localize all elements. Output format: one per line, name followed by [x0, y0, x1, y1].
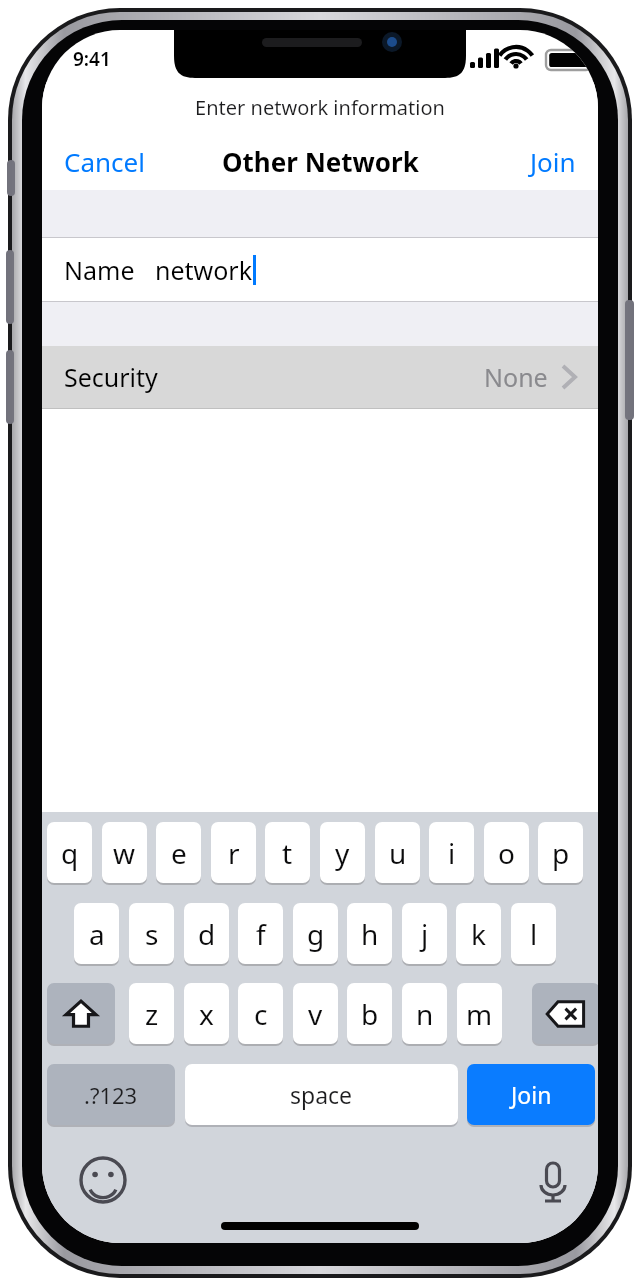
- staticText: q: [61, 834, 79, 872]
- button[interactable]: p: [538, 822, 583, 883]
- staticText: t: [282, 834, 293, 872]
- staticText: x: [199, 995, 214, 1033]
- staticText: h: [361, 915, 379, 953]
- staticText: a: [89, 915, 105, 953]
- staticText: l: [530, 915, 538, 953]
- button[interactable]: .?123: [47, 1064, 175, 1125]
- staticText: o: [498, 834, 515, 872]
- button[interactable]: space: [185, 1064, 458, 1125]
- button[interactable]: e: [156, 822, 201, 883]
- button[interactable]: u: [375, 822, 420, 883]
- button[interactable]: f: [238, 903, 283, 964]
- staticText: Security: [64, 360, 158, 394]
- button[interactable]: c: [238, 983, 283, 1044]
- staticText: Enter network information: [195, 94, 445, 121]
- staticText: s: [145, 915, 159, 953]
- button[interactable]: s: [129, 903, 174, 964]
- staticText: d: [198, 915, 216, 953]
- staticText: Other Network: [222, 144, 419, 179]
- button[interactable]: i: [429, 822, 474, 883]
- staticText: p: [552, 834, 570, 872]
- staticText: network: [155, 253, 253, 287]
- staticText: j: [421, 915, 429, 953]
- button[interactable]: x: [184, 983, 229, 1044]
- button[interactable]: m: [457, 983, 502, 1044]
- staticText: e: [171, 834, 187, 872]
- staticText: y: [335, 834, 350, 872]
- staticText: r: [228, 834, 240, 872]
- button[interactable]: z: [129, 983, 174, 1044]
- staticText: b: [361, 995, 379, 1033]
- staticText: m: [466, 995, 493, 1033]
- staticText: space: [290, 1079, 353, 1110]
- staticText: z: [145, 995, 159, 1033]
- staticText: Join: [511, 1079, 552, 1110]
- button[interactable]: Join: [467, 1064, 595, 1125]
- staticText: None: [484, 360, 548, 394]
- button[interactable]: Shift: [47, 983, 115, 1044]
- button[interactable]: Name: [42, 238, 598, 301]
- button[interactable]: q: [47, 822, 92, 883]
- button[interactable]: b: [347, 983, 392, 1044]
- button[interactable]: n: [402, 983, 447, 1044]
- staticText: f: [256, 915, 266, 953]
- button[interactable]: Emoji keyboard: [78, 1155, 128, 1205]
- staticText: u: [389, 834, 407, 872]
- staticText: c: [254, 995, 268, 1033]
- button[interactable]: j: [402, 903, 447, 964]
- staticText: g: [307, 915, 325, 953]
- button[interactable]: o: [484, 822, 529, 883]
- button[interactable]: Join: [508, 136, 598, 187]
- staticText: .?123: [84, 1080, 138, 1110]
- button[interactable]: h: [347, 903, 392, 964]
- staticText: i: [448, 834, 456, 872]
- staticText: Name: [64, 253, 135, 287]
- staticText: v: [308, 995, 323, 1033]
- button[interactable]: v: [293, 983, 338, 1044]
- button[interactable]: k: [456, 903, 501, 964]
- button[interactable]: l: [511, 903, 556, 964]
- button[interactable]: y: [320, 822, 365, 883]
- staticText: w: [113, 834, 136, 872]
- button[interactable]: Security: [42, 346, 598, 408]
- button[interactable]: Cancel: [42, 136, 167, 187]
- button[interactable]: r: [211, 822, 256, 883]
- button[interactable]: Dictation: [528, 1155, 578, 1205]
- staticText: n: [416, 995, 434, 1033]
- staticText: k: [471, 915, 486, 953]
- button[interactable]: Backspace: [532, 983, 598, 1044]
- button[interactable]: w: [102, 822, 147, 883]
- staticText: 9:41: [73, 46, 111, 72]
- button[interactable]: g: [293, 903, 338, 964]
- button[interactable]: d: [184, 903, 229, 964]
- button[interactable]: a: [74, 903, 119, 964]
- button[interactable]: t: [265, 822, 310, 883]
- staticText: Join: [530, 144, 576, 179]
- staticText: Cancel: [64, 144, 145, 179]
